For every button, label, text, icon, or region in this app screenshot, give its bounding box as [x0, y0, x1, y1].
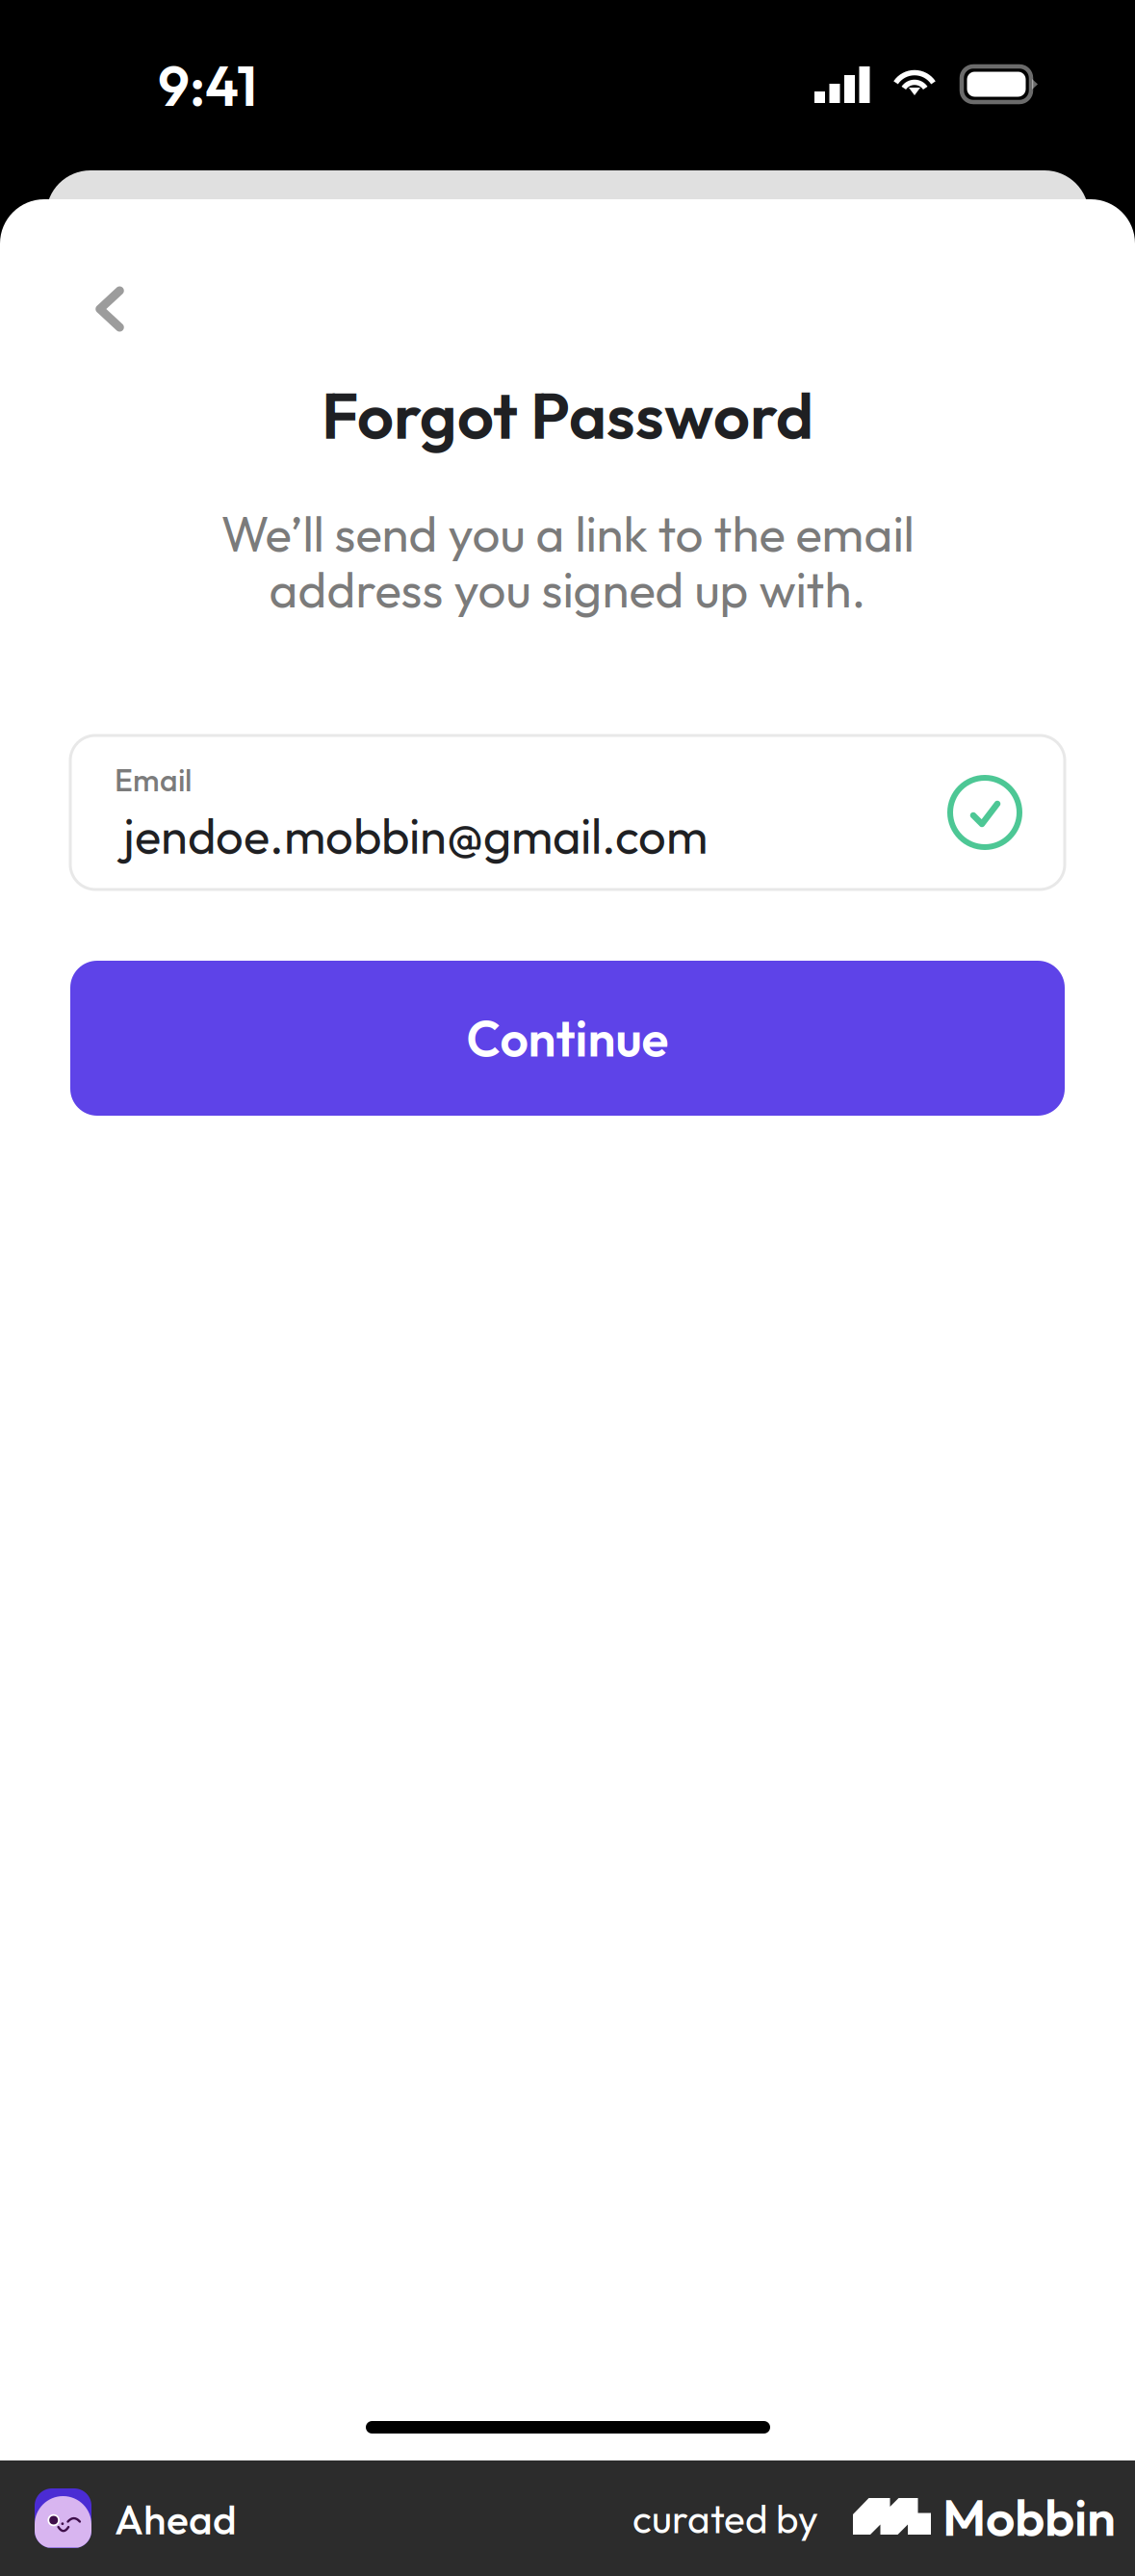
staticText: 9:41 — [158, 50, 257, 120]
staticText: Ahead — [115, 2493, 237, 2545]
staticText: Continue — [466, 1007, 669, 1069]
staticText: Mobbin — [942, 2485, 1116, 2549]
staticText: We’ll send you a link to the email — [221, 502, 914, 564]
staticText: Email — [115, 760, 192, 799]
staticText: jendoe.mobbin@gmail.com — [123, 805, 708, 866]
button[interactable]: Back — [62, 261, 158, 357]
staticText: address you signed up with. — [269, 558, 866, 620]
button[interactable]: Continue — [70, 961, 1065, 1116]
staticText: curated by — [632, 2494, 818, 2543]
staticText: Forgot Password — [322, 374, 813, 455]
